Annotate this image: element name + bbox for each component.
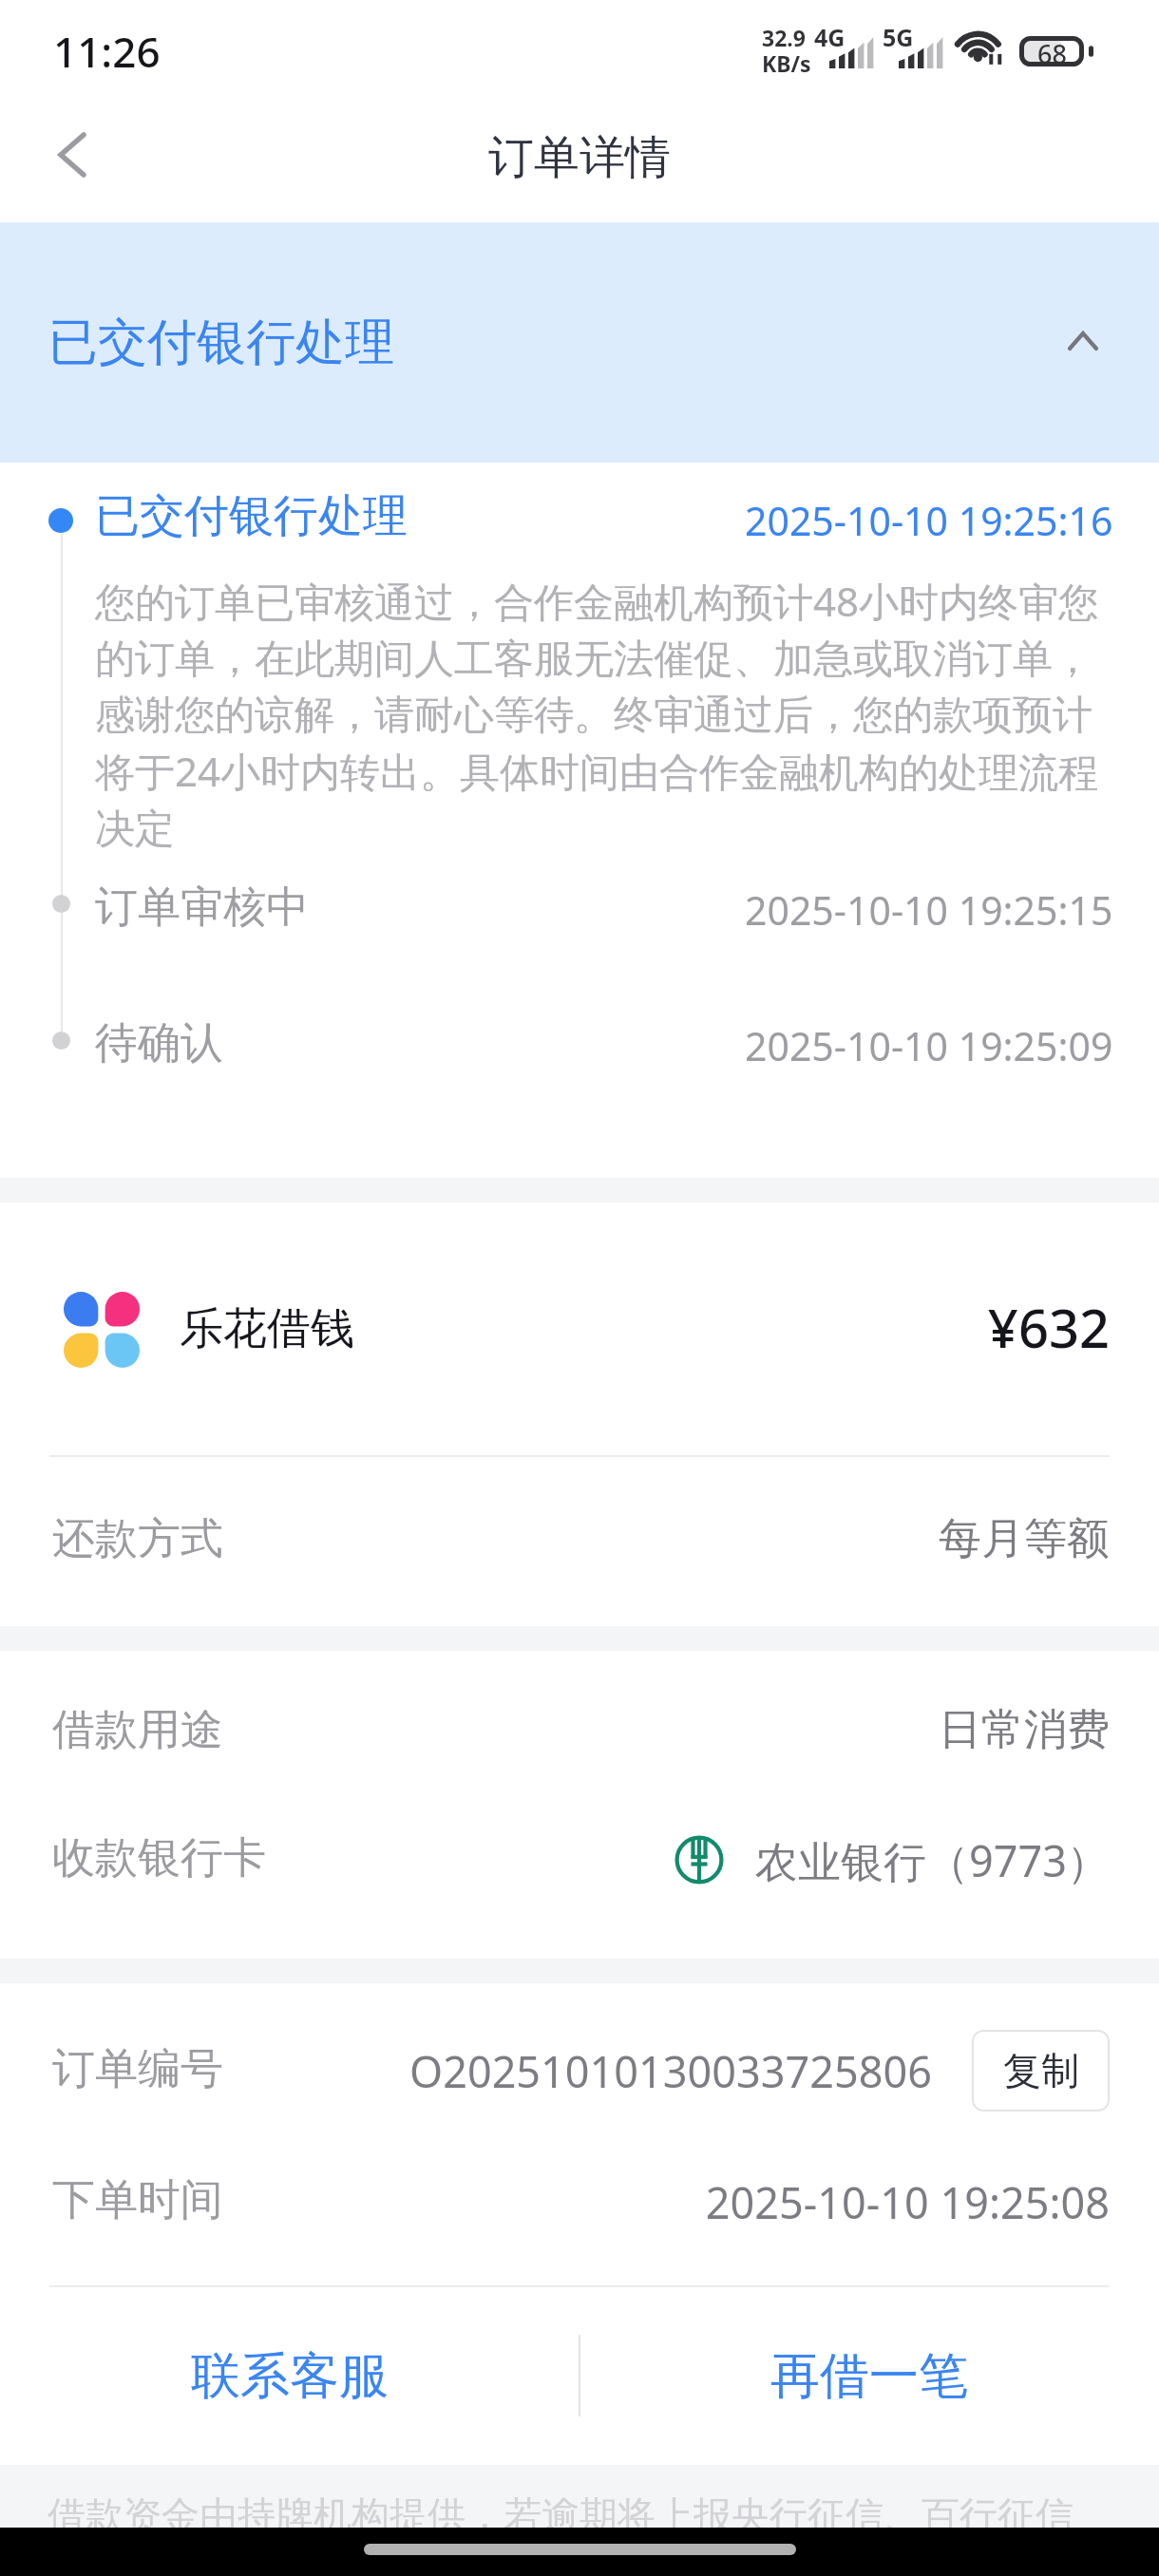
staticText: 复制 [1003,2047,1079,2094]
staticText: 联系客服 [191,2345,389,2408]
staticText: 借款资金由持牌机构提供，若逾期将上报央行征信、百行征信 [47,2491,1073,2539]
staticText: 订单审核中 [95,881,309,935]
staticText: O20251010130033725806 [409,2042,932,2100]
staticText: ¥632 [0,1291,1110,1363]
button[interactable]: 已交付银行处理 [0,222,1159,463]
staticText: 已交付银行处理 [48,312,394,374]
staticText: 订单编号 [52,2042,223,2096]
staticText: 32.9 [762,23,806,52]
button[interactable]: Collapse status timeline [1045,303,1121,379]
staticText: 订单详情 [488,129,671,186]
staticText: 2025-10-10 19:25:15 [745,883,1113,937]
button[interactable]: 再借一笔 [579,2287,1159,2465]
staticText: 日常消费 [0,1703,1110,1757]
staticText: 乐花借钱 [180,1301,354,1356]
staticText: 还款方式 [52,1512,223,1566]
staticText: 再借一笔 [770,2345,968,2408]
staticText: 11:26 [53,23,161,80]
staticText: 待确认 [95,1016,223,1070]
staticText: 借款用途 [52,1703,223,1757]
staticText: 农业银行（9773） [0,1831,1110,1889]
staticText: 2025-10-10 19:25:16 [745,494,1113,547]
button[interactable]: 联系客服 [0,2287,579,2465]
staticText: 4G [814,21,845,53]
staticText: 5G [883,21,914,53]
staticText: 您的订单已审核通过，合作金融机构预计48小时内终审您的订单，在此期间人工客服无法… [95,574,1119,855]
staticText: 每月等额 [0,1512,1110,1566]
button[interactable]: 复制 [972,2030,1110,2112]
staticText: 收款银行卡 [52,1831,266,1885]
staticText: 下单时间 [52,2173,223,2227]
staticText: KB/s [762,48,811,78]
staticText: 2025-10-10 19:25:08 [0,2173,1110,2231]
button[interactable]: Back [15,98,129,212]
staticText: 68 [1037,36,1067,66]
staticText: 已交付银行处理 [95,488,408,544]
staticText: 2025-10-10 19:25:09 [745,1019,1113,1072]
